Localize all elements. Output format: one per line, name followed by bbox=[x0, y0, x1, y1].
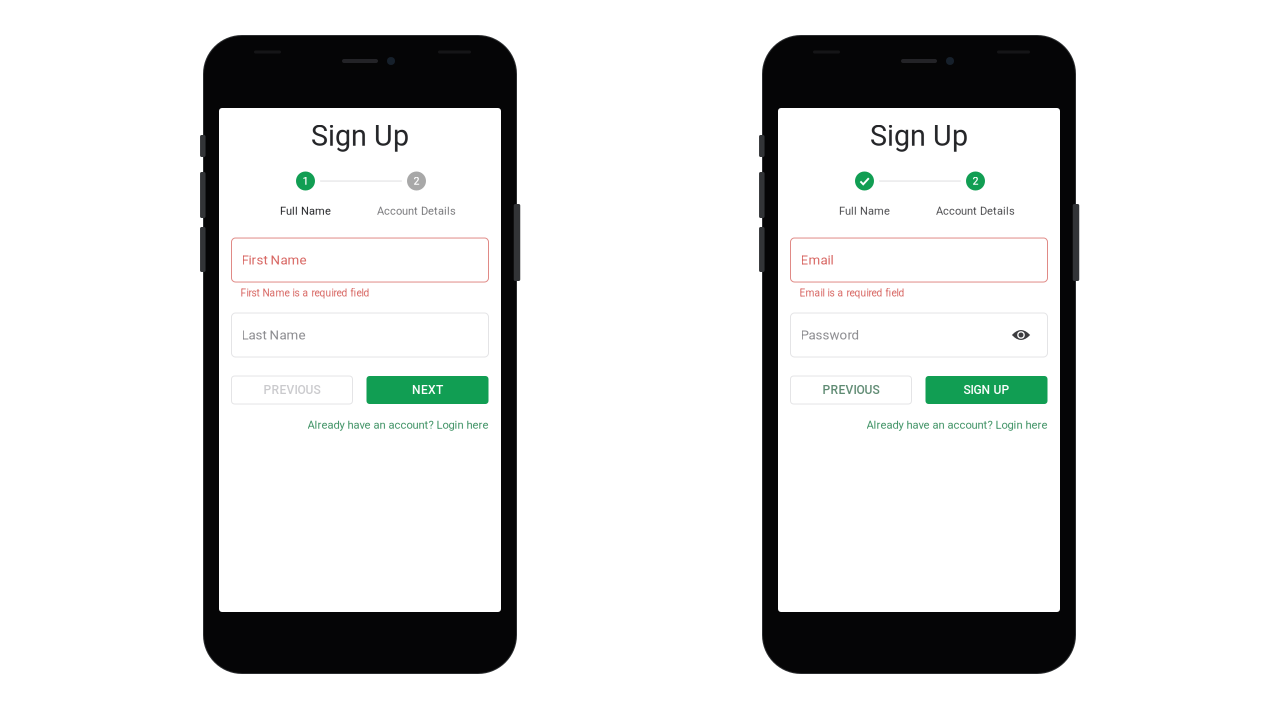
staticText: PREVIOUS bbox=[822, 383, 879, 397]
staticText: Account Details bbox=[936, 204, 1015, 217]
staticText: Email is a required field bbox=[799, 287, 904, 299]
staticText: Sign Up bbox=[870, 119, 968, 153]
staticText: Email bbox=[800, 252, 833, 268]
staticText: Last Name bbox=[241, 327, 305, 343]
staticText: 2 bbox=[413, 175, 419, 187]
button[interactable]: PREVIOUS bbox=[790, 376, 911, 404]
staticText: Account Details bbox=[377, 204, 456, 217]
staticText: Full Name bbox=[839, 204, 890, 217]
staticText: First Name bbox=[241, 252, 306, 268]
staticText: Already have an account? Login here bbox=[866, 418, 1047, 431]
staticText: First Name is a required field bbox=[240, 287, 369, 299]
button[interactable]: Email bbox=[790, 238, 1047, 282]
button[interactable]: NEXT bbox=[366, 376, 488, 404]
staticText: Already have an account? Login here bbox=[307, 418, 488, 431]
staticText: Full Name bbox=[280, 204, 331, 217]
staticText: Password bbox=[800, 327, 859, 343]
staticText: 2 bbox=[972, 175, 978, 187]
staticText: Sign Up bbox=[311, 119, 409, 153]
staticText: SIGN UP bbox=[963, 383, 1009, 397]
button[interactable]: SIGN UP bbox=[925, 376, 1047, 404]
button[interactable]: Already have an account? Login here bbox=[231, 418, 488, 431]
staticText: NEXT bbox=[412, 383, 443, 397]
button[interactable]: Last Name bbox=[231, 313, 488, 357]
staticText: PREVIOUS bbox=[263, 383, 320, 397]
button[interactable]: PREVIOUS bbox=[231, 376, 352, 404]
button[interactable]: Password bbox=[790, 313, 1047, 357]
button[interactable]: First Name bbox=[231, 238, 488, 282]
staticText: 1 bbox=[302, 175, 308, 187]
button[interactable]: Already have an account? Login here bbox=[790, 418, 1047, 431]
